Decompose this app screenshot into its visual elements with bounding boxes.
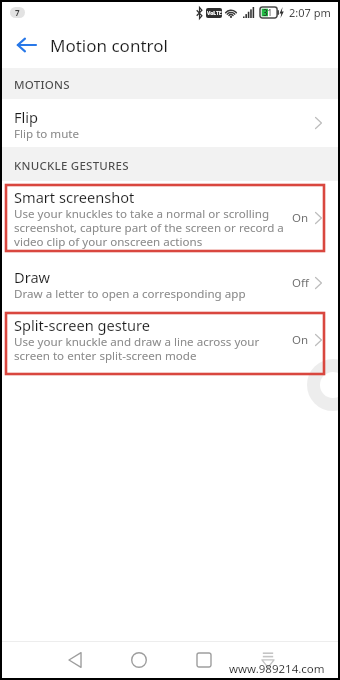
button[interactable]: Draw xyxy=(2,259,338,307)
staticText: 7 xyxy=(15,7,20,18)
staticText: Split-screen gesture xyxy=(14,315,150,335)
staticText: 31 xyxy=(263,7,273,18)
staticText: Motion control xyxy=(50,34,168,57)
staticText: Use your knuckle and draw a line across … xyxy=(14,335,260,363)
button[interactable]: Hide navigation bar xyxy=(252,643,284,675)
staticText: Draw xyxy=(14,267,51,287)
staticText: MOTIONS xyxy=(14,77,70,93)
staticText: On xyxy=(292,332,309,348)
button[interactable]: Flip xyxy=(2,99,338,147)
staticText: 2:07 pm xyxy=(289,5,331,20)
button[interactable]: Back xyxy=(12,31,40,59)
staticText: Flip xyxy=(14,107,39,127)
staticText: www.989214.com xyxy=(229,661,325,677)
button[interactable]: Back xyxy=(59,644,91,676)
staticText: On xyxy=(292,210,309,226)
button[interactable]: Recent apps xyxy=(188,644,220,676)
staticText: Draw a letter to open a corresponding ap… xyxy=(14,287,246,301)
staticText: Use your knuckles to take a normal or sc… xyxy=(14,207,284,249)
staticText: Flip to mute xyxy=(14,127,80,141)
staticText: Smart screenshot xyxy=(14,187,135,207)
staticText: Off xyxy=(292,275,309,291)
staticText: KNUCKLE GESTURES xyxy=(14,158,129,174)
button[interactable]: Split-screen gesture xyxy=(2,307,338,373)
staticText: VoLTE xyxy=(207,10,222,17)
button[interactable]: Smart screenshot xyxy=(2,181,338,259)
button[interactable]: Home xyxy=(123,644,155,676)
